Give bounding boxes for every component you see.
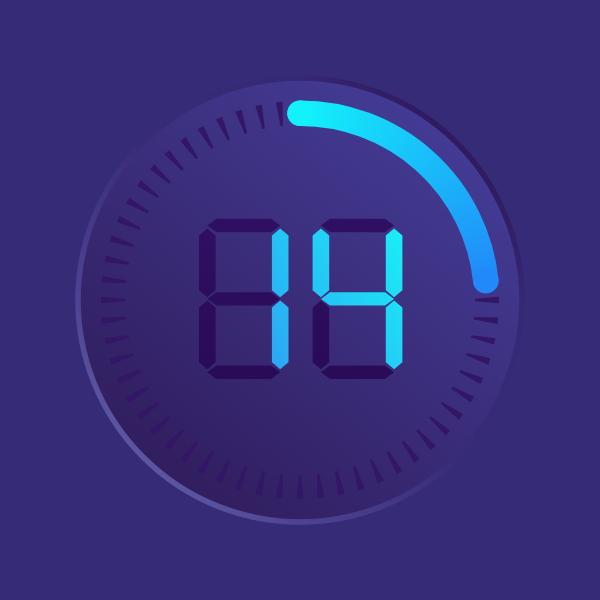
button[interactable]: Countdown timer, 14 minutes remaining — [78, 78, 522, 522]
